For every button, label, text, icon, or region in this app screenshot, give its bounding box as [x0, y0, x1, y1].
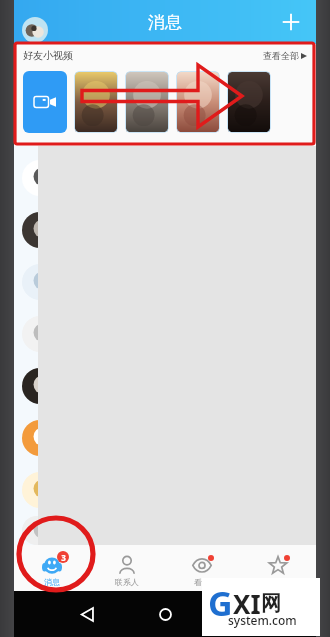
button[interactable]: Back: [48, 599, 126, 629]
button[interactable]: Friend video: [125, 71, 169, 133]
staticText: 看点: [194, 577, 210, 587]
button[interactable]: Friend video: [74, 71, 118, 133]
staticText: 联系人: [115, 577, 139, 587]
staticText: 消息: [148, 12, 182, 33]
button[interactable]: [14, 256, 316, 308]
button[interactable]: [14, 412, 316, 464]
button[interactable]: Profile: [22, 17, 48, 43]
button[interactable]: 看点: [164, 550, 240, 587]
button[interactable]: [14, 152, 316, 204]
staticText: 好友小视频: [23, 49, 73, 62]
staticText: 网: [261, 591, 281, 616]
staticText: 3: [61, 552, 66, 563]
staticText: G: [208, 580, 233, 626]
button[interactable]: Friend video: [176, 71, 220, 133]
button[interactable]: 动态: [240, 550, 316, 587]
staticText: 消息: [44, 577, 60, 587]
button[interactable]: [14, 204, 316, 256]
button[interactable]: Home: [126, 599, 204, 629]
button[interactable]: [14, 516, 316, 545]
staticText: system.com: [228, 612, 297, 628]
staticText: XI: [233, 586, 261, 621]
button[interactable]: Record video: [23, 71, 67, 133]
button[interactable]: Recents: [204, 599, 282, 629]
button[interactable]: 联系人: [89, 550, 164, 587]
button[interactable]: [14, 464, 316, 516]
button[interactable]: Friend video: [227, 71, 271, 133]
button[interactable]: [14, 308, 316, 360]
button[interactable]: 3: [14, 550, 89, 587]
button[interactable]: [14, 360, 316, 412]
staticText: 查看全部: [263, 50, 299, 61]
button[interactable]: Add: [276, 7, 306, 37]
button[interactable]: 查看全部: [263, 50, 307, 61]
